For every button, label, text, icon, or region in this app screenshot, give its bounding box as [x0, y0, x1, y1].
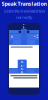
button[interactable]: English [21, 29, 27, 55]
staticText: ‹ [11, 33, 13, 40]
button[interactable]: Translate [18, 60, 27, 82]
staticText: correctly [16, 14, 32, 20]
staticText: Listen the translated text [3, 8, 44, 13]
staticText: Translation [22, 22, 25, 50]
staticText: Speak Translation [1, 0, 46, 7]
button[interactable]: Share [33, 34, 38, 39]
button[interactable]: Back [9, 34, 14, 39]
staticText: Translate [21, 60, 24, 81]
